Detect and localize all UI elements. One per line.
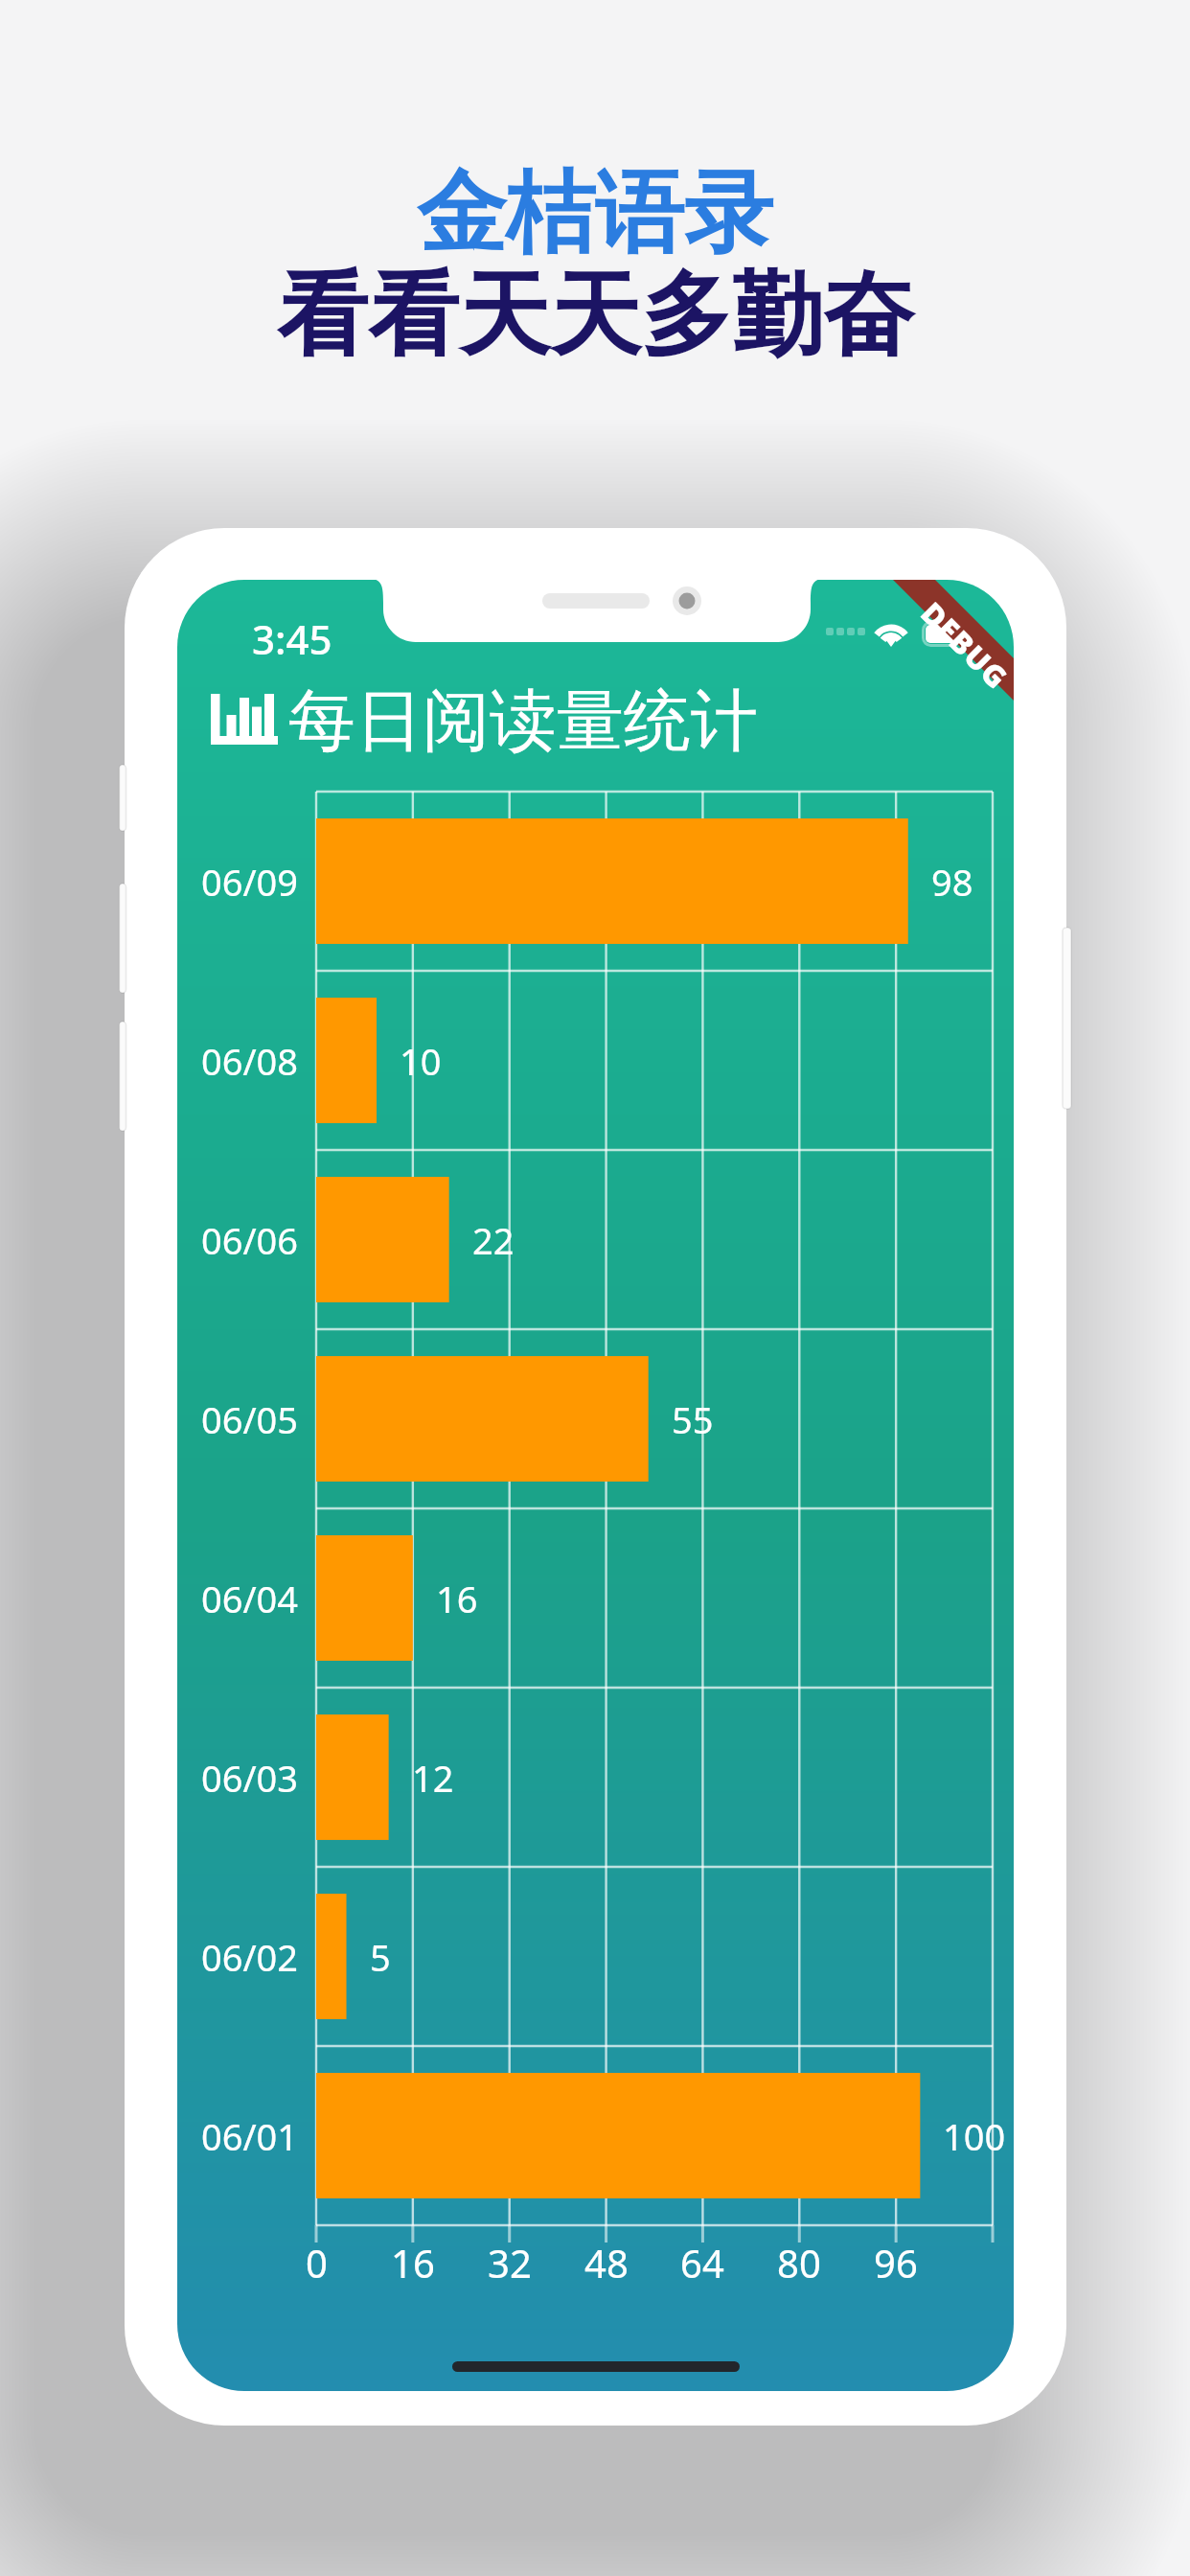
other: Reading statistics: [211, 690, 278, 745]
staticText: 16: [436, 1574, 478, 1623]
other: Battery full: [922, 621, 965, 647]
staticText: 06/03: [201, 1753, 299, 1803]
staticText: 06/08: [201, 1036, 299, 1086]
button[interactable]: 06/01: [183, 2046, 993, 2225]
staticText: 100: [943, 2111, 1006, 2161]
staticText: 看看天天多勤奋: [277, 259, 914, 374]
staticText: 06/09: [201, 857, 299, 907]
button[interactable]: Reading statistics: [200, 672, 737, 760]
button[interactable]: 06/03: [183, 1688, 993, 1867]
button[interactable]: 06/04: [183, 1508, 993, 1688]
staticText: 80: [777, 2237, 821, 2285]
staticText: 48: [584, 2237, 629, 2285]
staticText: 32: [488, 2237, 532, 2285]
staticText: 64: [680, 2237, 724, 2285]
staticText: 22: [472, 1215, 515, 1265]
staticText: 3:45: [252, 611, 332, 666]
staticText: 06/01: [201, 2111, 299, 2161]
button[interactable]: 06/05: [183, 1329, 993, 1508]
staticText: 16: [391, 2237, 435, 2285]
staticText: 55: [672, 1394, 714, 1444]
staticText: DEBUG: [913, 593, 1014, 698]
staticText: 06/05: [201, 1394, 299, 1444]
button[interactable]: 06/06: [183, 1150, 993, 1329]
button[interactable]: 06/08: [183, 971, 993, 1150]
staticText: 每日阅读量统计: [288, 679, 758, 764]
staticText: 金桔语录: [417, 157, 773, 269]
staticText: 06/04: [201, 1574, 299, 1623]
staticText: 0: [306, 2237, 328, 2285]
staticText: 12: [412, 1753, 454, 1803]
staticText: 06/06: [201, 1215, 299, 1265]
staticText: 06/02: [201, 1932, 299, 1982]
button[interactable]: 06/02: [183, 1867, 993, 2046]
staticText: 5: [370, 1932, 391, 1982]
staticText: 10: [400, 1036, 442, 1086]
other: Wi-Fi signal: [872, 617, 910, 647]
staticText: 98: [931, 857, 973, 907]
button[interactable]: 06/09: [183, 792, 993, 971]
staticText: 96: [874, 2237, 918, 2285]
